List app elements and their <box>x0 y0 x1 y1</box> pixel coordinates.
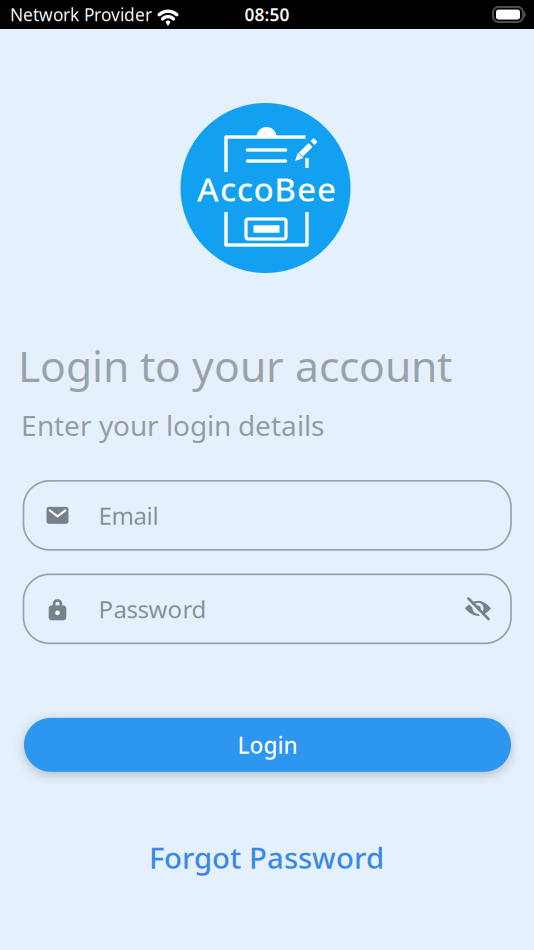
staticText: AccoBee <box>197 166 336 211</box>
staticText: Password <box>98 593 206 625</box>
button[interactable]: Forgot Password <box>149 838 384 877</box>
staticText: Login to your account <box>18 337 452 394</box>
staticText: Network Provider <box>10 3 152 26</box>
staticText: Enter your login details <box>21 407 324 444</box>
staticText: Email <box>98 499 158 531</box>
staticText: Login <box>237 730 297 760</box>
staticText: 08:50 <box>244 3 289 26</box>
button[interactable]: Login <box>24 718 511 772</box>
staticText: Forgot Password <box>149 838 384 877</box>
button[interactable]: Show password <box>465 597 491 621</box>
